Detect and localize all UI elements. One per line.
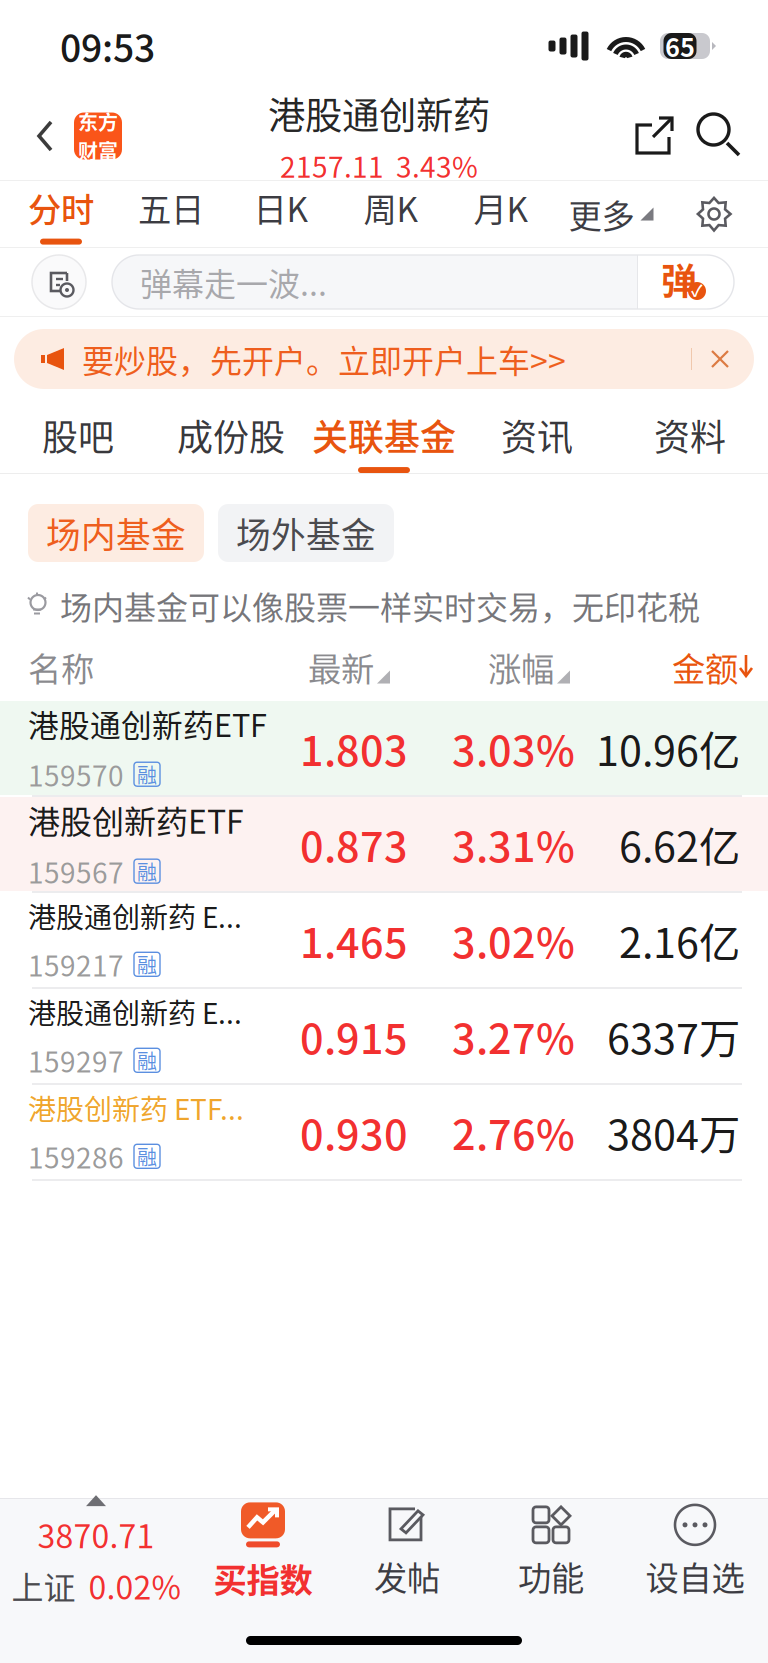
staticText: 2.16亿 (619, 910, 740, 970)
button[interactable]: 资料 (613, 401, 766, 473)
staticText: 09:53 (60, 19, 155, 73)
staticText: 成份股 (177, 409, 285, 461)
button[interactable]: Share (620, 92, 688, 180)
staticText: ✓ (691, 278, 703, 302)
button[interactable]: 关联基金 (307, 401, 460, 473)
staticText: 融 (137, 857, 157, 886)
staticText: 1.465 (300, 910, 408, 970)
button[interactable]: 功能 (479, 1499, 623, 1607)
staticText: 65 (665, 28, 695, 64)
button[interactable]: 港股通创新药 E... (0, 989, 768, 1083)
staticText: 港股通创新药 (268, 86, 490, 140)
staticText: 港股通创新药ETF (28, 701, 267, 746)
staticText: 场内基金 (46, 508, 186, 558)
staticText: 涨幅 (488, 643, 554, 691)
staticText: 159297 (28, 1040, 124, 1080)
staticText: 弹幕走一波... (140, 259, 327, 305)
staticText: 港股通创新药 E... (28, 895, 242, 936)
button[interactable]: 成份股 (154, 401, 307, 473)
staticText: 0.930 (300, 1102, 408, 1162)
button[interactable]: Back (18, 92, 138, 180)
staticText: 港股创新药ETF (28, 797, 244, 843)
staticText: 功能 (518, 1552, 584, 1600)
staticText: 3.02% (452, 910, 575, 970)
staticText: 弹 (661, 253, 697, 305)
staticText: 月K (473, 183, 528, 232)
staticText: 更多 (568, 190, 634, 238)
button[interactable]: 发帖 (335, 1499, 479, 1607)
staticText: 159217 (28, 944, 124, 984)
staticText: 股吧 (42, 409, 114, 461)
staticText: 资讯 (501, 409, 573, 461)
staticText: 2.76% (452, 1102, 575, 1162)
staticText: 3870.71 (37, 1511, 154, 1557)
button[interactable]: 港股通创新药ETF (0, 701, 768, 795)
button[interactable]: 场外基金 (218, 504, 394, 562)
button[interactable]: 五日 (116, 181, 226, 247)
staticText: 港股通创新药 E... (28, 991, 242, 1032)
staticText: 要炒股，先开户。立即开户上车>> (82, 336, 566, 382)
staticText: 3.31% (452, 814, 575, 874)
button[interactable]: 月K (446, 181, 556, 247)
button[interactable]: 资讯 (460, 401, 613, 473)
staticText: 资料 (654, 409, 726, 461)
button[interactable]: 港股通创新药 E... (0, 893, 768, 987)
staticText: 159567 (28, 851, 124, 891)
button[interactable]: 日K (226, 181, 336, 247)
staticText: 融 (137, 1142, 157, 1171)
button[interactable]: 场内基金 (28, 504, 204, 562)
staticText: 关联基金 (312, 409, 456, 461)
staticText: 买指数 (213, 1554, 312, 1602)
button[interactable]: Search (688, 92, 752, 180)
staticText: 名称 (28, 643, 94, 691)
button[interactable]: 股吧 (1, 401, 154, 473)
staticText: 融 (137, 950, 157, 979)
button[interactable]: 周K (336, 181, 446, 247)
staticText: 融 (137, 1046, 157, 1075)
staticText: 港股创新药 ETF... (28, 1087, 244, 1128)
staticText: 财富 (78, 136, 118, 165)
staticText: 五日 (138, 183, 204, 232)
staticText: 设自选 (645, 1552, 744, 1600)
button[interactable]: 分时 (6, 181, 116, 247)
staticText: 日K (253, 183, 308, 232)
staticText: 融 (137, 760, 157, 789)
staticText: 场外基金 (236, 508, 376, 558)
staticText: 159286 (28, 1136, 124, 1176)
staticText: 0.873 (300, 814, 408, 874)
staticText: 0.02% (88, 1562, 180, 1609)
staticText: 6337万 (607, 1006, 740, 1066)
staticText: 3.03% (452, 718, 575, 778)
staticText: 3.27% (452, 1006, 575, 1066)
button[interactable]: 上证指数 (1, 1499, 191, 1607)
staticText: 东方 (78, 107, 118, 136)
staticText: 159570 (28, 754, 124, 794)
staticText: 1.803 (300, 718, 408, 778)
staticText: 6.62亿 (619, 814, 740, 874)
staticText: 周K (363, 183, 418, 232)
staticText: 金额 (672, 643, 738, 691)
staticText: 2157.11 3.43% (280, 145, 478, 186)
staticText: 场内基金可以像股票一样实时交易，无印花税 (60, 582, 700, 629)
staticText: 最新 (308, 643, 374, 691)
button[interactable]: 港股创新药ETF (0, 797, 768, 891)
staticText: 0.915 (300, 1006, 408, 1066)
button[interactable]: Settings (682, 181, 746, 247)
staticText: 3804万 (607, 1102, 740, 1162)
button[interactable]: 买指数 (191, 1499, 335, 1607)
staticText: 分时 (28, 183, 94, 232)
staticText: 上证 (11, 1562, 75, 1609)
staticText: 10.96亿 (596, 718, 740, 778)
button[interactable]: 设自选 (623, 1499, 767, 1607)
staticText: 发帖 (374, 1552, 440, 1600)
button[interactable]: 港股创新药 ETF... (0, 1085, 768, 1179)
button[interactable]: Close (692, 330, 748, 388)
button[interactable]: Danmu settings (32, 255, 86, 309)
